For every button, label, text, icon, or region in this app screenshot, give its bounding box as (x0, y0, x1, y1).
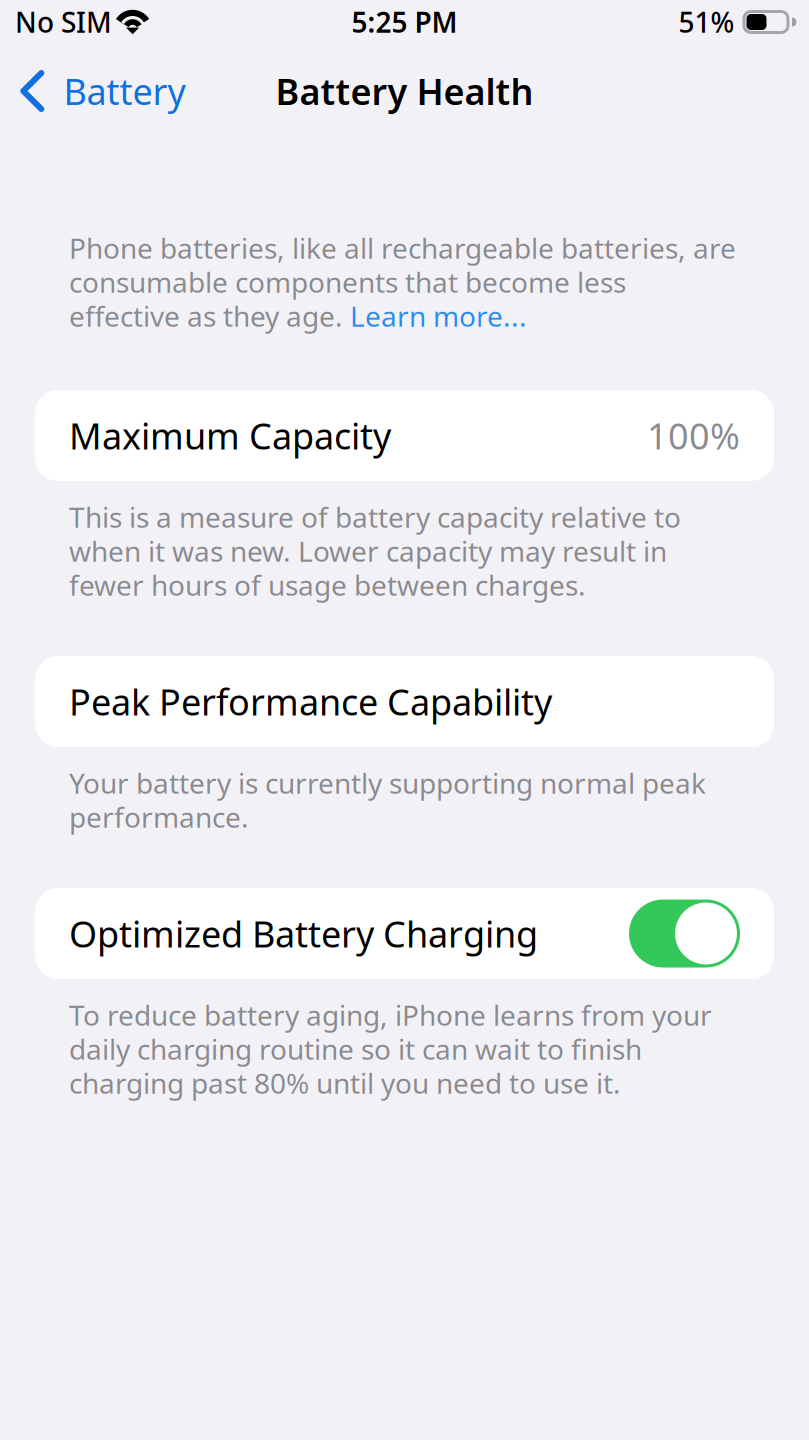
staticText: Learn more... (350, 297, 527, 335)
staticText: consumable components that become less (69, 263, 626, 301)
staticText: effective as they age. (69, 297, 350, 335)
staticText: 100% (647, 412, 740, 459)
staticText: performance. (69, 798, 249, 836)
button[interactable]: Battery (0, 44, 202, 138)
staticText: Peak Performance Capability (69, 678, 552, 725)
staticText: Battery Health (275, 67, 533, 115)
staticText: daily charging routine so it can wait to… (69, 1030, 642, 1068)
staticText: Your battery is currently supporting nor… (69, 764, 706, 802)
staticText: 5:25 PM (351, 3, 457, 41)
button[interactable]: Peak Performance Capability (35, 656, 774, 747)
button[interactable]: Maximum Capacity (35, 390, 774, 481)
staticText: This is a measure of battery capacity re… (69, 498, 681, 536)
staticText: Maximum Capacity (69, 412, 391, 459)
staticText: charging past 80% until you need to use … (69, 1064, 621, 1102)
staticText: when it was new. Lower capacity may resu… (69, 532, 667, 570)
staticText: To reduce battery aging, iPhone learns f… (69, 996, 712, 1034)
staticText: Battery (64, 67, 186, 115)
staticText: 51% (678, 3, 734, 41)
button[interactable]: Learn more... (350, 299, 527, 333)
staticText: No SIM (15, 3, 112, 41)
staticText: fewer hours of usage between charges. (69, 566, 586, 604)
staticText: Optimized Battery Charging (69, 910, 538, 957)
staticText: Phone batteries, like all rechargeable b… (69, 229, 736, 267)
button[interactable]: Optimized Battery Charging (629, 899, 740, 967)
